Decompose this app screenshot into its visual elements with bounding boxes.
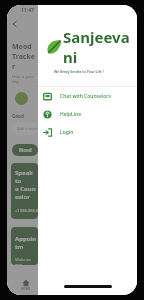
staticText: Mood Tracker [12, 42, 38, 72]
staticText: We Bring Smiles to Your Life ! [54, 69, 137, 74]
staticText: How is your day [12, 74, 38, 84]
staticText: Add a note [17, 126, 38, 131]
button[interactable]: Appointm [11, 227, 38, 265]
button[interactable]: Chat with Counselors [38, 87, 137, 105]
button[interactable]: Login [38, 123, 137, 141]
staticText: +1 555-555-5 [15, 208, 38, 213]
staticText: Good [12, 113, 24, 119]
button[interactable] [15, 92, 28, 105]
button[interactable]: Add a note [12, 122, 38, 135]
other: Back [11, 20, 19, 28]
button[interactable]: Home [21, 279, 31, 291]
staticText: Mood [19, 147, 32, 153]
staticText: Appointm [15, 235, 38, 251]
staticText: HOME [21, 287, 31, 291]
staticText: Sanjeevani [63, 27, 133, 67]
staticText: Make an app [15, 257, 38, 265]
button[interactable]: Mood [12, 144, 38, 156]
staticText: Speak to [15, 169, 38, 185]
button[interactable]: Speak to [11, 163, 38, 219]
other: Home [22, 279, 30, 287]
staticText: HelpLine [60, 111, 82, 118]
staticText: a Counselor [15, 185, 38, 201]
staticText: Login [60, 129, 74, 136]
staticText: Chat with Counselors [60, 93, 111, 100]
button[interactable]: HelpLine [38, 105, 137, 123]
staticText: 11:47 [21, 7, 34, 14]
button[interactable] [7, 5, 38, 295]
